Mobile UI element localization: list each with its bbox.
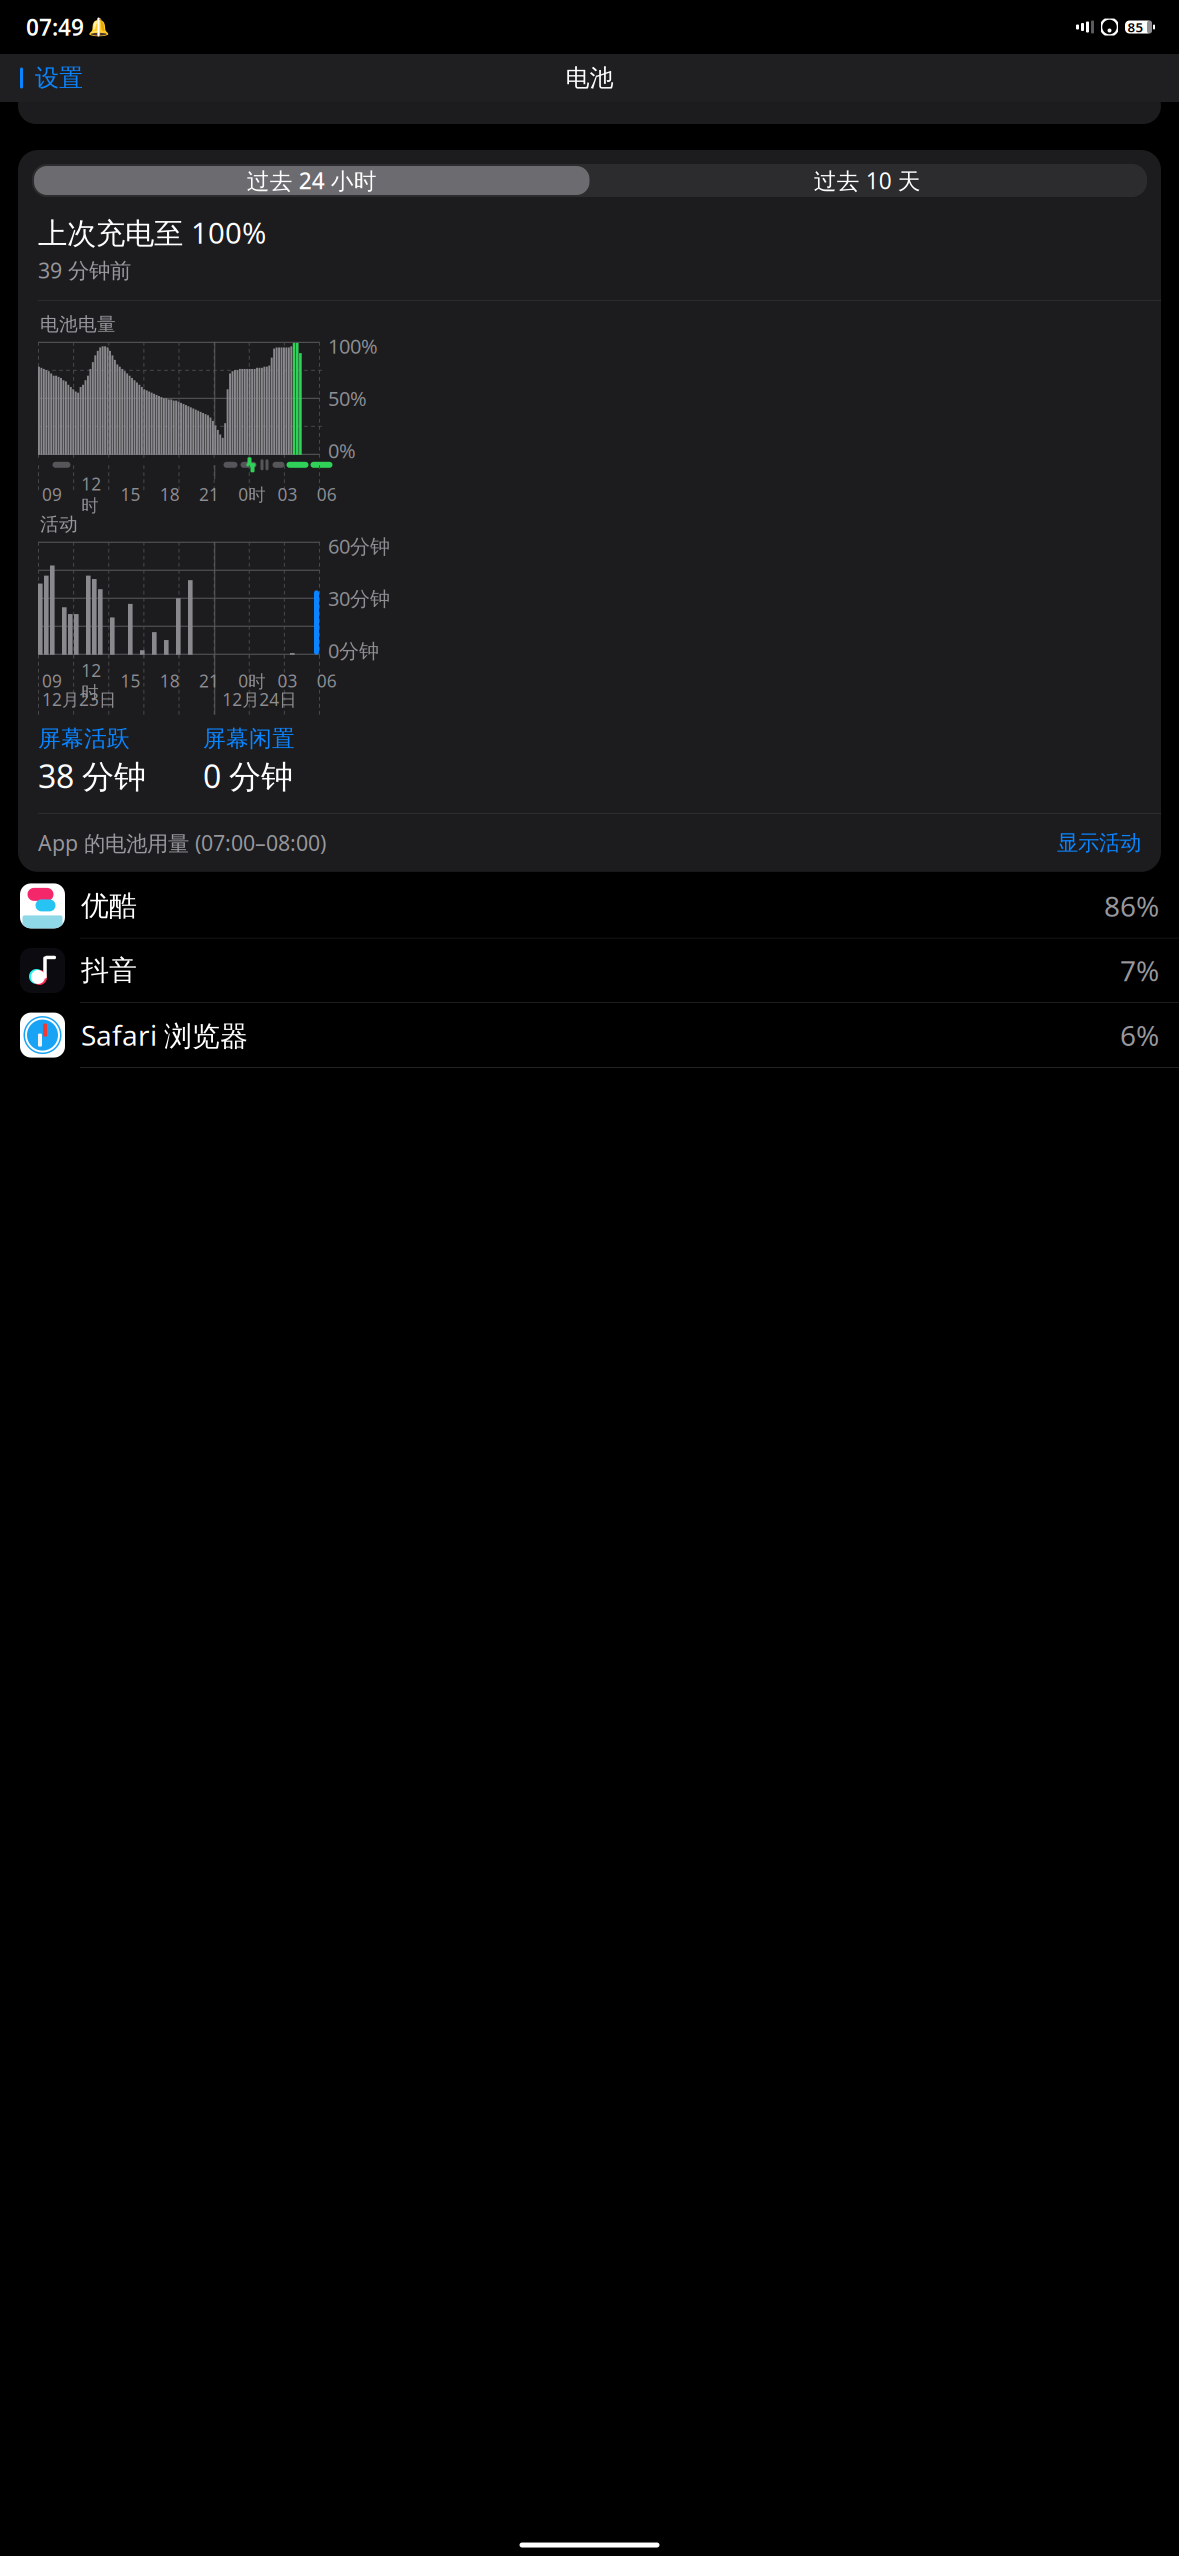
staticText: 38 分钟 [38, 755, 146, 797]
staticText: 抖音 [81, 953, 137, 988]
staticText: 0时 [238, 669, 265, 692]
staticText: 6% [1120, 1016, 1159, 1054]
staticText: 过去 10 天 [814, 165, 921, 195]
staticText: 12月23日 [42, 688, 116, 711]
staticText: 21 [199, 483, 219, 506]
staticText: 30分钟 [328, 585, 390, 612]
staticText: 06 [317, 669, 337, 692]
staticText: 12时 [81, 472, 101, 516]
staticText: 过去 24 小时 [247, 165, 377, 195]
staticText: 15 [120, 483, 140, 506]
staticText: 06 [317, 483, 337, 506]
staticText: 🔔 [87, 17, 109, 37]
staticText: 18 [160, 669, 180, 692]
button[interactable]: 优酷 [0, 874, 1179, 938]
staticText: 0分钟 [328, 637, 379, 664]
staticText: 100% [328, 333, 378, 359]
staticText: 21 [199, 669, 219, 692]
staticText: 上次充电至 100% [38, 213, 266, 252]
button[interactable]: 设置 [8, 57, 83, 99]
staticText: Safari 浏览器 [81, 1016, 248, 1054]
staticText: 活动 [40, 513, 78, 536]
button[interactable]: Safari 浏览器 [0, 1003, 1179, 1068]
staticText: 86% [1104, 887, 1159, 924]
staticText: 18 [160, 483, 180, 506]
staticText: 7% [1120, 952, 1159, 989]
staticText: 0时 [238, 483, 265, 506]
staticText: 07:49 [26, 12, 84, 42]
staticText: 电池电量 [40, 313, 116, 336]
staticText: 03 [277, 669, 297, 692]
staticText: 屏幕闲置 [203, 725, 295, 752]
staticText: 60分钟 [328, 533, 390, 559]
staticText: 0% [328, 437, 356, 464]
staticText: 电池 [565, 63, 613, 93]
staticText: 优酷 [81, 889, 137, 923]
button[interactable]: 过去 24 小时 [34, 166, 589, 195]
staticText: 电池健康与充电 [38, 65, 227, 98]
staticText: 09 [42, 669, 62, 692]
staticText: 12月24日 [222, 688, 296, 711]
staticText: 显示活动 [1057, 830, 1141, 856]
staticText: 50% [328, 385, 367, 412]
staticText: 15 [120, 669, 140, 692]
button[interactable]: 显示活动 [1057, 826, 1141, 860]
staticText: App 的电池用量 (07:00–08:00) [38, 829, 326, 857]
button[interactable]: 过去 10 天 [589, 166, 1145, 195]
staticText: 12时 [81, 659, 101, 703]
staticText: 39 分钟前 [38, 256, 131, 284]
staticText: 0 分钟 [203, 755, 293, 797]
staticText: 设置 [35, 63, 83, 93]
staticText: 屏幕活跃 [38, 725, 130, 752]
button[interactable]: 抖音 [0, 938, 1179, 1003]
staticText: 03 [277, 483, 297, 506]
staticText: 85 [1127, 18, 1143, 36]
staticText: 09 [42, 483, 62, 506]
